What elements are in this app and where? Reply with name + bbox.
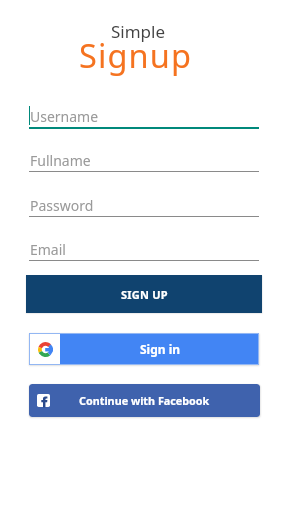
button[interactable]: Fullname — [29, 154, 259, 178]
button[interactable]: Facebook — [29, 384, 260, 417]
staticText: Sign in — [140, 341, 181, 357]
staticText: Username — [30, 107, 99, 126]
button[interactable]: Password — [29, 199, 259, 223]
other: Google — [38, 342, 53, 357]
staticText: SIGN UP — [121, 287, 168, 302]
button[interactable]: Username — [29, 110, 259, 134]
other: Facebook — [37, 394, 50, 407]
staticText: Fullname — [30, 151, 91, 170]
button[interactable]: Google — [29, 333, 259, 365]
staticText: Email — [30, 240, 66, 259]
staticText: Continue with Facebook — [79, 393, 210, 408]
staticText: Simple — [0, 20, 276, 43]
staticText: Signup — [0, 33, 271, 77]
button[interactable]: SIGN UP — [26, 275, 262, 313]
staticText: Password — [30, 196, 94, 215]
button[interactable]: Email — [29, 243, 259, 267]
